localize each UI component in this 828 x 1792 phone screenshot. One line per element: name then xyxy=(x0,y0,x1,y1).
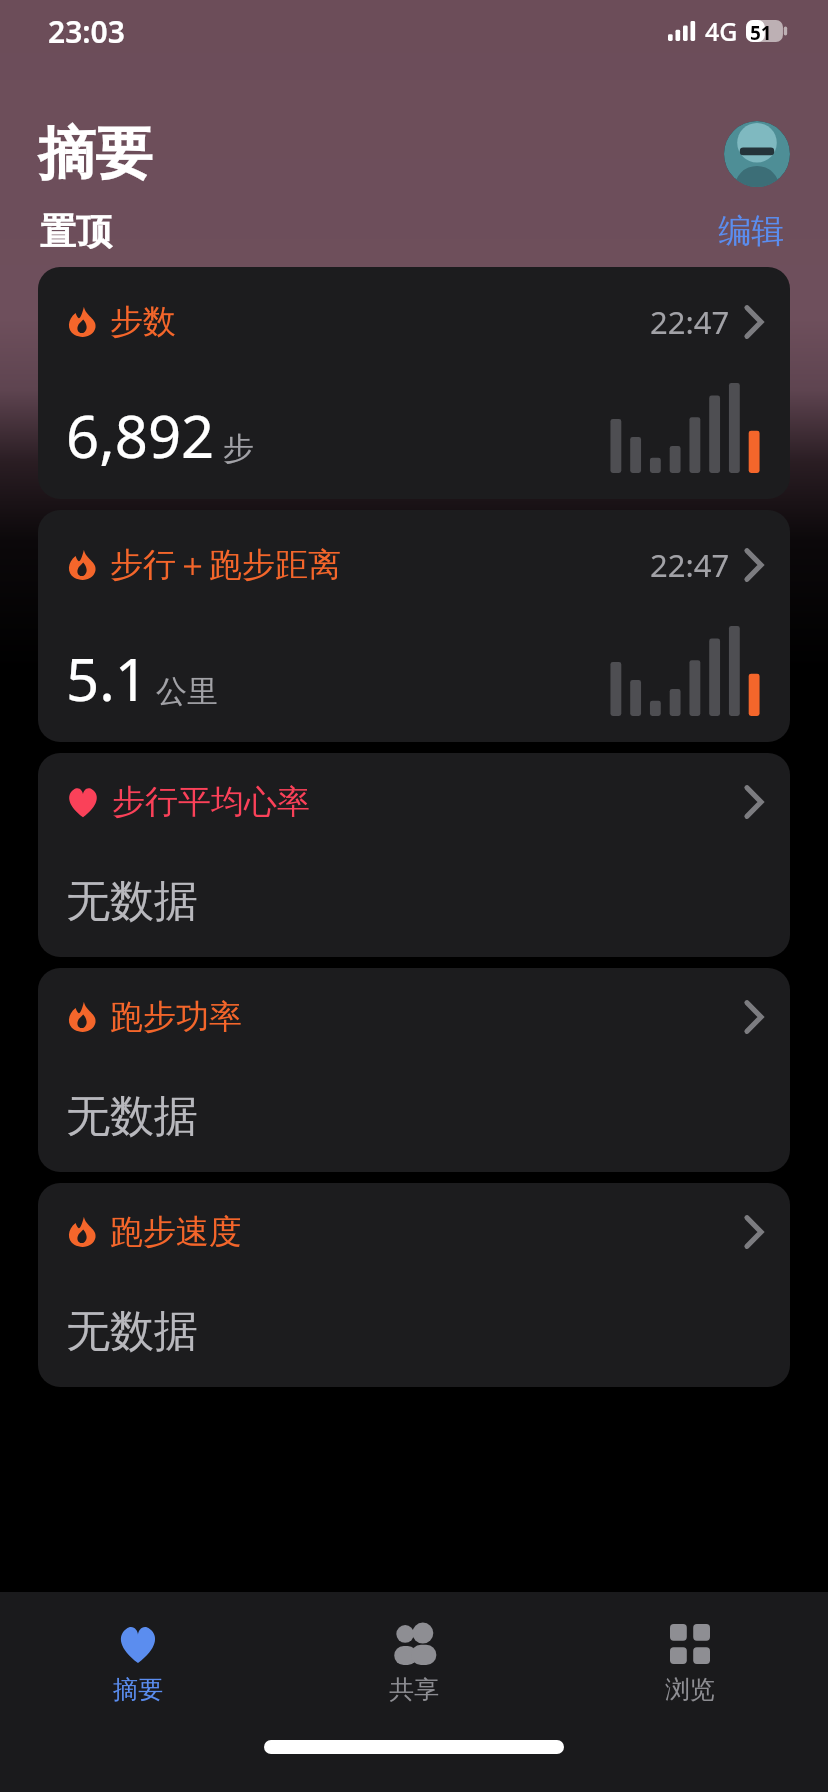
staticText: 编辑 xyxy=(718,210,784,252)
other: 共享 xyxy=(388,1623,440,1665)
button[interactable]: 步数 xyxy=(38,267,790,499)
other: 浏览 xyxy=(670,1624,710,1664)
staticText: 摘要 xyxy=(113,1674,163,1705)
staticText: 跑步速度 xyxy=(110,1211,242,1253)
button[interactable]: 摘要 xyxy=(0,1592,276,1732)
staticText: 无数据 xyxy=(66,1089,198,1144)
staticText: 共享 xyxy=(389,1674,439,1705)
button[interactable]: 步行平均心率 xyxy=(38,753,790,957)
button[interactable]: Profile xyxy=(724,121,790,187)
staticText: 6,892 xyxy=(66,396,215,475)
button[interactable]: 共享 xyxy=(276,1592,552,1732)
staticText: 23:03 xyxy=(48,11,125,52)
staticText: 步 xyxy=(223,429,254,468)
staticText: 浏览 xyxy=(665,1674,715,1705)
button[interactable]: 步行＋跑步距离 xyxy=(38,510,790,742)
staticText: 步行平均心率 xyxy=(112,781,310,823)
staticText: 无数据 xyxy=(66,874,198,929)
staticText: 公里 xyxy=(156,672,218,711)
staticText: 步数 xyxy=(110,301,176,343)
button[interactable]: 跑步功率 xyxy=(38,968,790,1172)
staticText: 22:47 xyxy=(650,301,730,343)
staticText: 22:47 xyxy=(650,544,730,586)
staticText: 置顶 xyxy=(40,209,112,254)
staticText: 51 xyxy=(750,20,772,42)
button[interactable]: 编辑 xyxy=(714,206,788,256)
button[interactable]: 跑步速度 xyxy=(38,1183,790,1387)
button[interactable]: 浏览 xyxy=(552,1592,828,1732)
staticText: 5.1 xyxy=(66,639,148,718)
staticText: 跑步功率 xyxy=(110,996,242,1038)
staticText: 步行＋跑步距离 xyxy=(110,544,341,586)
staticText: 摘要 xyxy=(38,118,152,190)
staticText: 无数据 xyxy=(66,1304,198,1359)
staticText: 4G xyxy=(705,14,738,48)
